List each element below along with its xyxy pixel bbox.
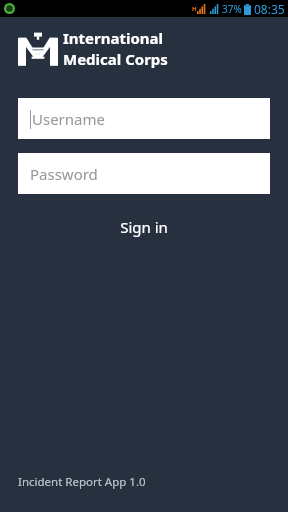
staticText: 08:35 [254, 1, 285, 17]
staticText: H [192, 5, 197, 13]
staticText: Password [30, 164, 98, 184]
button[interactable]: Password [18, 153, 270, 194]
staticText: Medical Corps [63, 49, 168, 69]
staticText: Incident Report App 1.0 [18, 474, 146, 490]
staticText: Sign in [120, 217, 168, 237]
staticText: Username [32, 109, 105, 129]
button[interactable]: Sign in [0, 212, 288, 242]
button[interactable]: Username [18, 98, 270, 139]
staticText: 37% [222, 2, 242, 16]
staticText: International [63, 28, 164, 48]
